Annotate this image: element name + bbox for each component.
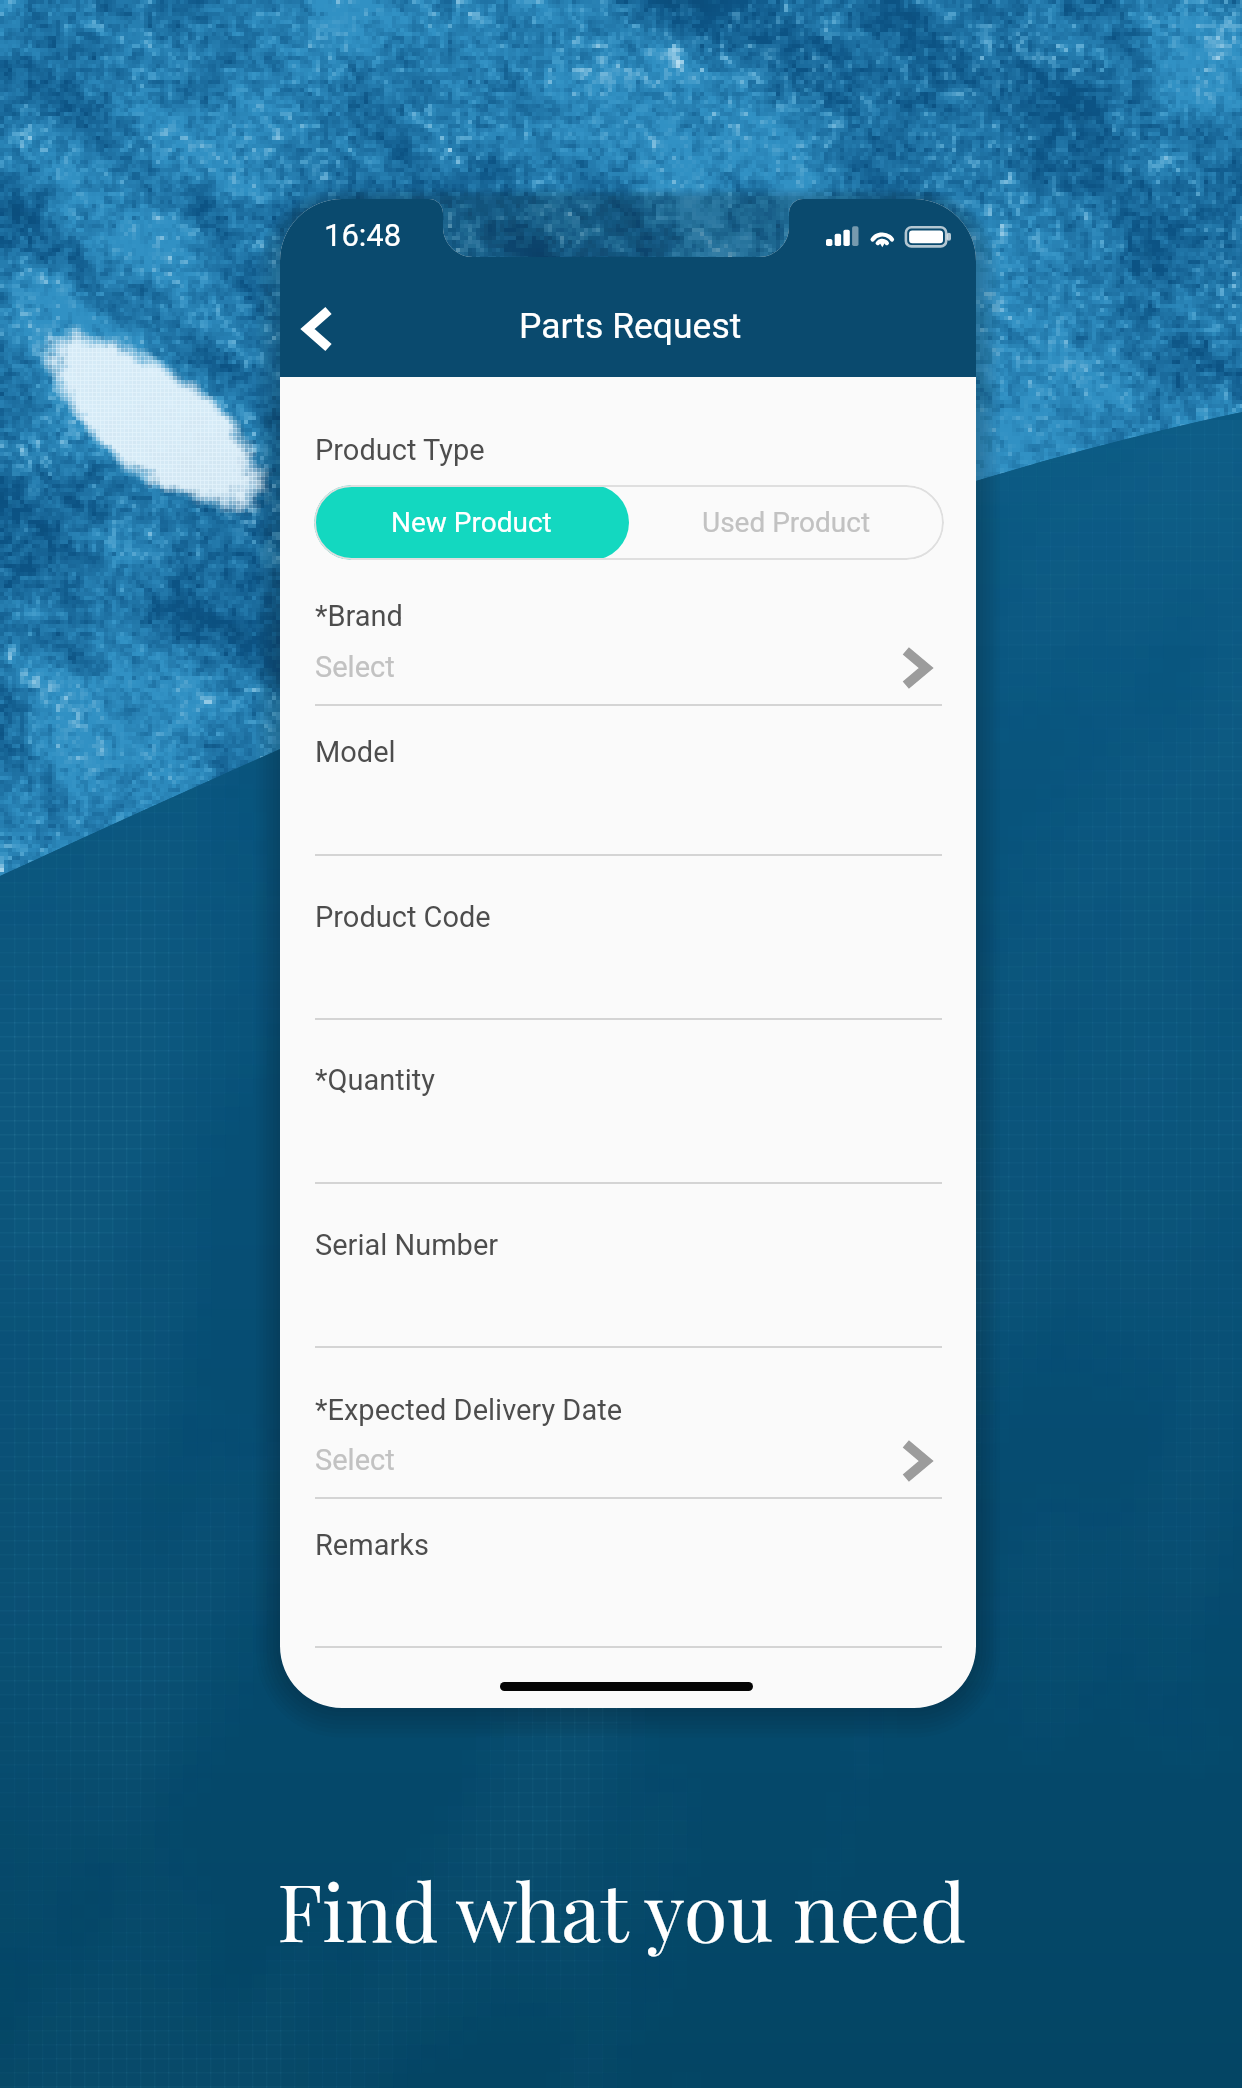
staticText: Serial Number [315,1228,499,1262]
staticText: Parts Request [519,305,742,347]
staticText: *Brand [315,599,403,633]
staticText: Remarks [315,1528,429,1562]
staticText: Find what you need [277,1857,966,1962]
button[interactable]: Back [282,291,354,367]
staticText: Used Product [702,506,871,539]
staticText: Product Code [315,900,491,934]
staticText: New Product [391,506,552,539]
staticText: *Expected Delivery Date [315,1393,623,1427]
button[interactable]: New Product [314,485,629,560]
staticText: 16:48 [324,217,402,253]
staticText: Product Type [315,433,485,467]
button[interactable]: Open selector [880,1427,952,1495]
button[interactable]: Open selector [880,634,952,702]
staticText: Model [315,735,396,769]
staticText: Select [315,1443,395,1477]
button[interactable]: Used Product [629,485,944,560]
staticText: Select [315,650,395,684]
staticText: *Quantity [315,1063,435,1097]
